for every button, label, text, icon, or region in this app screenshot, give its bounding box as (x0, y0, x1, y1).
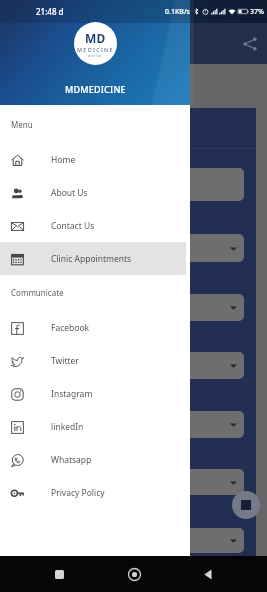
staticText: Whatsapp (51, 454, 92, 466)
staticText: About Us (51, 187, 88, 199)
button[interactable] (178, 168, 244, 201)
button[interactable]: Clinic Appointments (0, 242, 186, 275)
button[interactable] (178, 352, 244, 379)
staticText: 0.1KB/s (165, 7, 191, 17)
staticText: Home (51, 154, 76, 166)
button[interactable]: Instagram (0, 377, 186, 410)
staticText: MEDICINE (77, 46, 114, 53)
staticText: Menu (11, 119, 33, 130)
staticText: Communicate (11, 287, 64, 298)
staticText: linkedIn (51, 421, 84, 433)
staticText: MDMEDICINE (65, 83, 126, 95)
staticText: dental (88, 53, 103, 58)
staticText: Clinic Appointments (51, 253, 132, 265)
button[interactable] (178, 411, 244, 438)
button[interactable]: Back (193, 559, 223, 589)
staticText: Facebook (51, 322, 90, 334)
button[interactable]: Home (119, 559, 149, 589)
button[interactable]: Record (232, 491, 260, 519)
button[interactable]: Twitter (0, 344, 186, 377)
staticText: Instagram (51, 388, 93, 400)
button[interactable]: About Us (0, 176, 186, 209)
button[interactable] (178, 294, 244, 321)
button[interactable]: Contact Us (0, 209, 186, 242)
button[interactable]: Recents (44, 559, 74, 589)
button[interactable]: Facebook (0, 311, 186, 344)
staticText: Privacy Policy (51, 487, 105, 499)
staticText: Contact Us (51, 220, 95, 232)
button[interactable]: Home (0, 143, 186, 176)
button[interactable] (178, 234, 244, 262)
staticText: MD (85, 30, 106, 46)
staticText: Twitter (51, 355, 79, 367)
button[interactable]: Share (238, 32, 262, 56)
staticText: 21:48 d (36, 6, 64, 17)
staticText: 37% (250, 7, 264, 17)
button[interactable]: linkedIn (0, 410, 186, 443)
button[interactable] (178, 469, 244, 495)
button[interactable]: Privacy Policy (0, 476, 186, 509)
button[interactable]: Whatsapp (0, 443, 186, 476)
button[interactable] (178, 528, 244, 553)
